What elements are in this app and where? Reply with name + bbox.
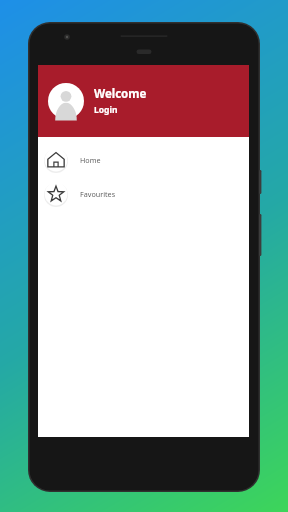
staticText: Home	[80, 155, 101, 165]
staticText: Favourites	[80, 189, 116, 199]
button[interactable]: Favourites	[38, 180, 249, 208]
staticText: Welcome	[94, 86, 147, 102]
button[interactable]: Welcome	[38, 65, 249, 137]
button[interactable]: Home	[38, 146, 249, 174]
staticText: Login	[94, 104, 118, 116]
